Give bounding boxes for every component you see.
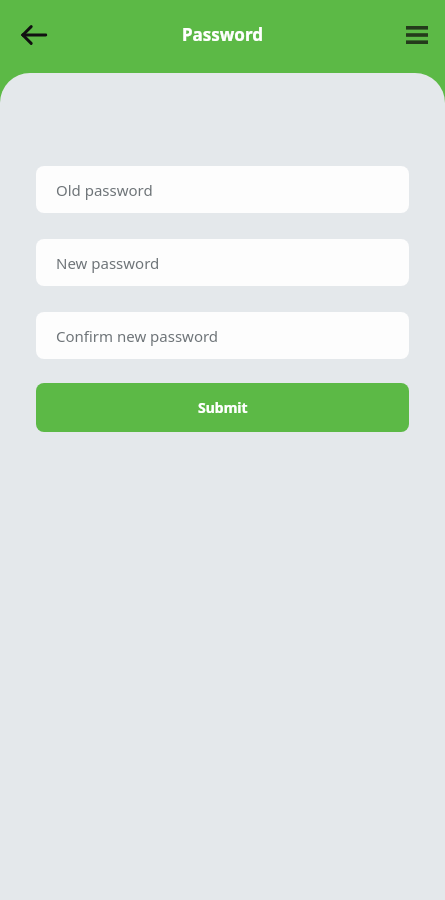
staticText: Submit (198, 398, 248, 417)
button[interactable]: Submit (36, 383, 409, 432)
button[interactable]: Old password (36, 166, 409, 213)
staticText: Confirm new password (56, 326, 219, 346)
staticText: New password (56, 253, 160, 273)
staticText: Password (0, 23, 445, 46)
button[interactable]: Back (10, 11, 58, 59)
staticText: Old password (56, 180, 153, 200)
button[interactable]: Confirm new password (36, 312, 409, 359)
button[interactable]: Menu (395, 13, 439, 57)
button[interactable]: New password (36, 239, 409, 286)
